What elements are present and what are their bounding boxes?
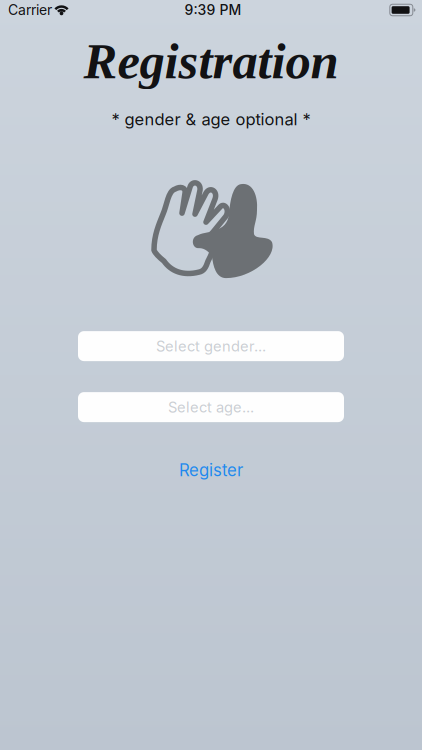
staticText: * gender & age optional * <box>111 109 310 129</box>
button[interactable]: Select gender... <box>78 331 344 361</box>
staticText: 9:39 PM <box>184 1 241 18</box>
staticText: Select gender... <box>156 337 266 355</box>
staticText: Carrier <box>8 1 52 18</box>
staticText: Select age... <box>168 398 254 416</box>
staticText: Registration <box>83 33 338 89</box>
button[interactable]: Select age... <box>78 392 344 422</box>
staticText: Register <box>179 460 243 480</box>
button[interactable]: Register <box>167 455 255 485</box>
